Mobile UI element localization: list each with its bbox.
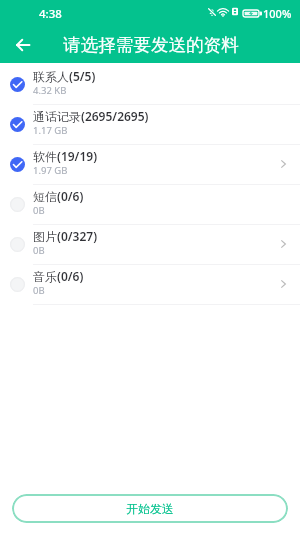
staticText: 4.32 KB — [33, 84, 67, 97]
staticText: 0B — [33, 244, 45, 257]
staticText: 请选择需要发送的资料 — [63, 34, 239, 56]
staticText: 开始发送 — [126, 501, 174, 516]
staticText: 100% — [263, 6, 292, 21]
button[interactable]: 通话记录(2695/2695) — [0, 105, 300, 145]
staticText: 音乐(0/6) — [33, 268, 84, 284]
staticText: 0B — [33, 284, 45, 297]
staticText: 1.97 GB — [33, 164, 68, 177]
staticText: 通话记录(2695/2695) — [33, 108, 149, 124]
button[interactable]: 开始发送 — [12, 494, 288, 523]
button[interactable]: 联系人(5/5) — [0, 65, 300, 105]
staticText: 0B — [33, 204, 45, 217]
staticText: 图片(0/327) — [33, 228, 98, 244]
button[interactable]: 音乐(0/6) — [0, 265, 300, 305]
button[interactable]: 软件(19/19) — [0, 145, 300, 185]
button[interactable]: Back — [6, 28, 39, 61]
button[interactable]: 图片(0/327) — [0, 225, 300, 265]
staticText: 4:38 — [39, 6, 62, 22]
button[interactable]: 短信(0/6) — [0, 185, 300, 225]
staticText: 软件(19/19) — [33, 148, 98, 164]
staticText: 短信(0/6) — [33, 188, 84, 204]
staticText: 1.17 GB — [33, 124, 68, 137]
staticText: 联系人(5/5) — [33, 68, 96, 84]
